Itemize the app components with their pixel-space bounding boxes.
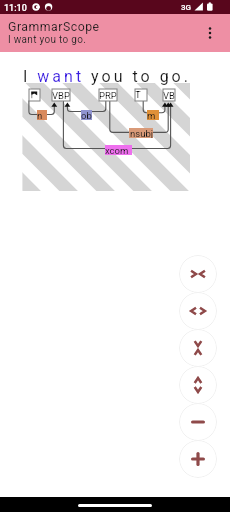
staticText: VBP: [52, 90, 70, 101]
button[interactable]: Zoom out: [179, 403, 217, 441]
staticText: 3G: [181, 3, 191, 12]
staticText: xcomp: [105, 145, 132, 155]
button[interactable]: VBP: [52, 89, 70, 101]
staticText: PRP: [99, 90, 117, 101]
button[interactable]: More options: [198, 21, 222, 45]
button[interactable]: ma: [147, 110, 159, 120]
staticText: ns: [37, 110, 47, 120]
staticText: obj: [81, 110, 92, 120]
button[interactable]: [29, 89, 40, 101]
button[interactable]: TO: [135, 89, 147, 101]
staticText: 11:10: [4, 3, 27, 14]
button[interactable]: Expand vertically: [179, 366, 217, 404]
button[interactable]: PRP: [99, 89, 117, 101]
button[interactable]: nsubj: [129, 128, 153, 138]
staticText: VB: [163, 90, 175, 101]
button[interactable]: obj: [81, 110, 92, 120]
staticText: GrammarScope: [8, 20, 100, 34]
staticText: I want you to go.: [8, 34, 87, 46]
button[interactable]: Expand horizontally: [179, 292, 217, 330]
button[interactable]: ns: [37, 110, 47, 120]
button[interactable]: xcomp: [105, 145, 132, 155]
button[interactable]: Zoom in: [179, 440, 217, 478]
staticText: TO: [135, 89, 147, 101]
staticText: ma: [147, 110, 159, 120]
button[interactable]: Collapse horizontally: [179, 255, 217, 293]
button[interactable]: Collapse vertically: [179, 329, 217, 367]
staticText: I want you to go.: [23, 67, 191, 86]
button[interactable]: VB: [163, 89, 175, 101]
staticText: nsubj: [130, 128, 153, 138]
